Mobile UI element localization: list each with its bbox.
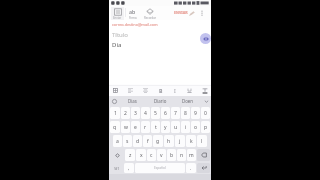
button[interactable]: 8 [181,107,190,119]
staticText: Título [112,31,128,39]
button[interactable]: l [197,135,207,147]
button[interactable]: Shift [110,149,124,161]
button[interactable]: 7 [171,107,180,119]
button[interactable]: Align left [126,86,135,95]
staticText: t [155,124,157,131]
button[interactable]: Enter [197,163,210,173]
button[interactable]: s [123,135,132,147]
staticText: u [174,124,178,131]
button[interactable]: Emoji [109,96,119,106]
staticText: 8 [184,110,187,117]
button[interactable]: b [167,149,176,161]
staticText: Diario [154,98,167,104]
staticText: r [144,124,147,131]
staticText: B [159,87,163,94]
button[interactable]: m [187,149,196,161]
staticText: a [116,138,119,145]
button[interactable]: 3 [131,107,140,119]
button[interactable]: x [136,149,146,161]
button[interactable]: abc [127,8,139,20]
staticText: j [179,138,181,145]
button[interactable]: correo.destino@mail.com [109,20,211,29]
button[interactable]: k [186,135,196,147]
staticText: Español [154,166,166,170]
button[interactable]: q [110,121,120,133]
staticText: 5 [154,110,157,117]
staticText: k [190,138,193,145]
staticText: . [190,165,192,172]
button[interactable]: Collapse [200,33,211,44]
staticText: 4 [144,110,147,117]
staticText: Firma [129,16,137,20]
staticText: v [160,152,163,159]
button[interactable]: j [175,135,185,147]
staticText: Dias [128,98,137,104]
button[interactable]: 6 [161,107,170,119]
button[interactable]: 9 [191,107,200,119]
button[interactable]: h [164,135,174,147]
staticText: 3 [134,110,137,117]
staticText: abc [129,8,137,16]
staticText: i [185,124,187,131]
button[interactable]: Italic [170,86,179,95]
button[interactable]: Doen [174,96,202,106]
button[interactable]: g [153,135,163,147]
button[interactable]: Título [109,29,211,40]
staticText: correo.destino@mail.com [112,22,158,27]
staticText: x [140,152,143,159]
button[interactable]: a [113,135,122,147]
button[interactable]: t [151,121,160,133]
button[interactable]: Expand [202,97,211,106]
button[interactable]: Recordar [142,8,158,20]
button[interactable]: d [133,135,142,147]
staticText: b [170,152,174,159]
button[interactable]: Dias [119,96,146,106]
staticText: 2 [124,110,127,117]
button[interactable]: . [186,163,196,173]
button[interactable]: , [124,163,134,173]
button[interactable]: u [171,121,180,133]
staticText: 0 [204,110,207,117]
button[interactable]: v [157,149,166,161]
button[interactable]: 5 [151,107,160,119]
button[interactable]: Align center [141,86,150,95]
button[interactable]: Attach [187,9,195,17]
staticText: Día [112,41,122,49]
button[interactable]: Enviar [111,7,124,20]
button[interactable]: w [121,121,130,133]
button[interactable]: 2 [121,107,130,119]
button[interactable]: Día [109,40,211,85]
staticText: !#1 [114,166,120,171]
button[interactable]: n [177,149,186,161]
button[interactable]: Underline [185,86,194,95]
button[interactable]: 0 [201,107,210,119]
staticText: 1 [114,110,117,117]
button[interactable]: e [131,121,140,133]
button[interactable]: Backspace [197,149,210,161]
button[interactable]: Diario [146,96,174,106]
button[interactable]: o [191,121,200,133]
staticText: e [134,124,137,131]
button[interactable]: More options [198,9,206,17]
button[interactable]: Español [135,163,185,173]
staticText: Enviar [113,16,122,20]
button[interactable]: !#1 [110,163,123,173]
button[interactable]: r [141,121,150,133]
button[interactable]: p [201,121,210,133]
button[interactable]: y [161,121,170,133]
button[interactable]: f [143,135,152,147]
staticText: ENVIAR [174,10,188,15]
button[interactable]: z [125,149,135,161]
button[interactable]: i [181,121,190,133]
staticText: q [113,124,117,131]
button[interactable]: c [147,149,156,161]
button[interactable]: 4 [141,107,150,119]
button[interactable]: Insert table [111,86,120,95]
staticText: h [167,138,171,145]
staticText: l [201,138,203,145]
button[interactable]: ENVIAR [173,10,189,15]
button[interactable]: Bold [156,86,165,95]
staticText: y [164,124,167,131]
button[interactable]: 1 [110,107,120,119]
button[interactable]: Text color [200,86,209,95]
